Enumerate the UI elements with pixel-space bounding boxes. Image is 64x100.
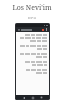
button[interactable]: Back <box>22 96 25 99</box>
button[interactable]: Menu <box>16 27 49 32</box>
button[interactable]: Bookmark <box>41 28 44 31</box>
button[interactable]: Home <box>31 96 34 99</box>
staticText: נביאים <box>0 16 64 19</box>
button[interactable]: More options <box>45 28 48 31</box>
button[interactable]: Menu <box>17 28 20 31</box>
button[interactable]: Recent apps <box>40 96 43 99</box>
staticText: Los Nevi'im <box>0 3 64 13</box>
